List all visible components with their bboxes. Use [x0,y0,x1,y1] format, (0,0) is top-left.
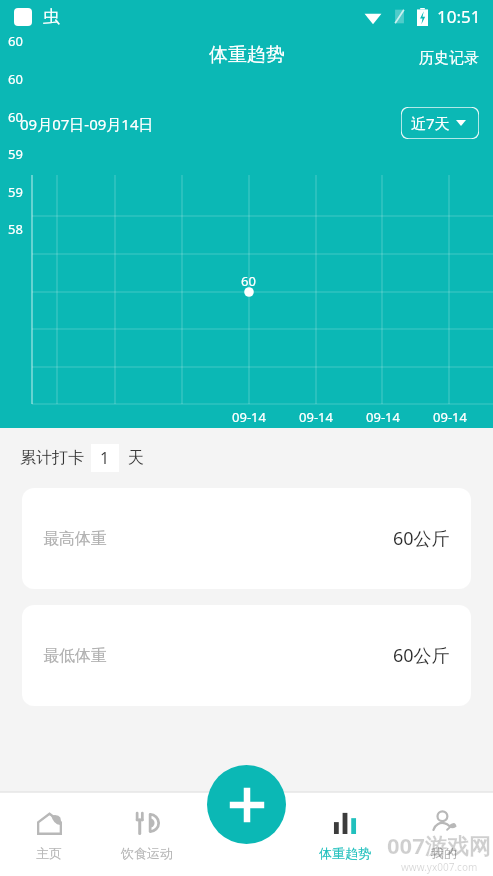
staticText: 体重趋势 [319,845,371,861]
staticText: 体重趋势 [209,43,285,67]
staticText: 58 [8,220,23,238]
staticText: www.yx007.com [401,860,478,874]
staticText: 最高体重 [43,529,107,549]
staticText: 历史记录 [419,49,479,68]
button[interactable]: 最高体重 [22,488,471,589]
staticText: 59 [8,183,23,201]
staticText: 天 [128,448,144,468]
staticText: 59 [8,145,23,163]
button[interactable]: 主页 [0,792,98,876]
staticText: 60 [8,32,23,50]
button[interactable]: Add new record [207,765,286,844]
staticText: 60公斤 [393,643,450,668]
staticText: 09-14 [433,408,467,426]
staticText: 虫 [43,6,60,27]
button[interactable]: 最低体重 [22,605,471,706]
staticText: 近7天 [411,113,450,133]
staticText: 1 [100,447,110,469]
button[interactable]: 近7天 [401,107,479,139]
staticText: 累计打卡 [20,448,84,468]
button[interactable]: 我的 [394,792,493,876]
staticText: 饮食运动 [121,845,173,861]
button[interactable]: 体重趋势 [295,792,394,876]
staticText: 60 [8,70,23,88]
staticText: 60 [8,108,23,126]
staticText: 60公斤 [393,526,450,551]
staticText: 09-14 [299,408,333,426]
button[interactable]: 饮食运动 [98,792,196,876]
staticText: 09-14 [232,408,266,426]
staticText: 10:51 [437,5,481,28]
staticText: 我的 [431,845,457,861]
staticText: 主页 [36,845,62,861]
staticText: 007游戏网 [387,830,491,860]
staticText: 09-14 [366,408,400,426]
button[interactable]: 历史记录 [405,41,493,82]
staticText: 60 [241,272,256,290]
staticText: 最低体重 [43,646,107,666]
staticText: 09月07日-09月14日 [20,114,154,134]
